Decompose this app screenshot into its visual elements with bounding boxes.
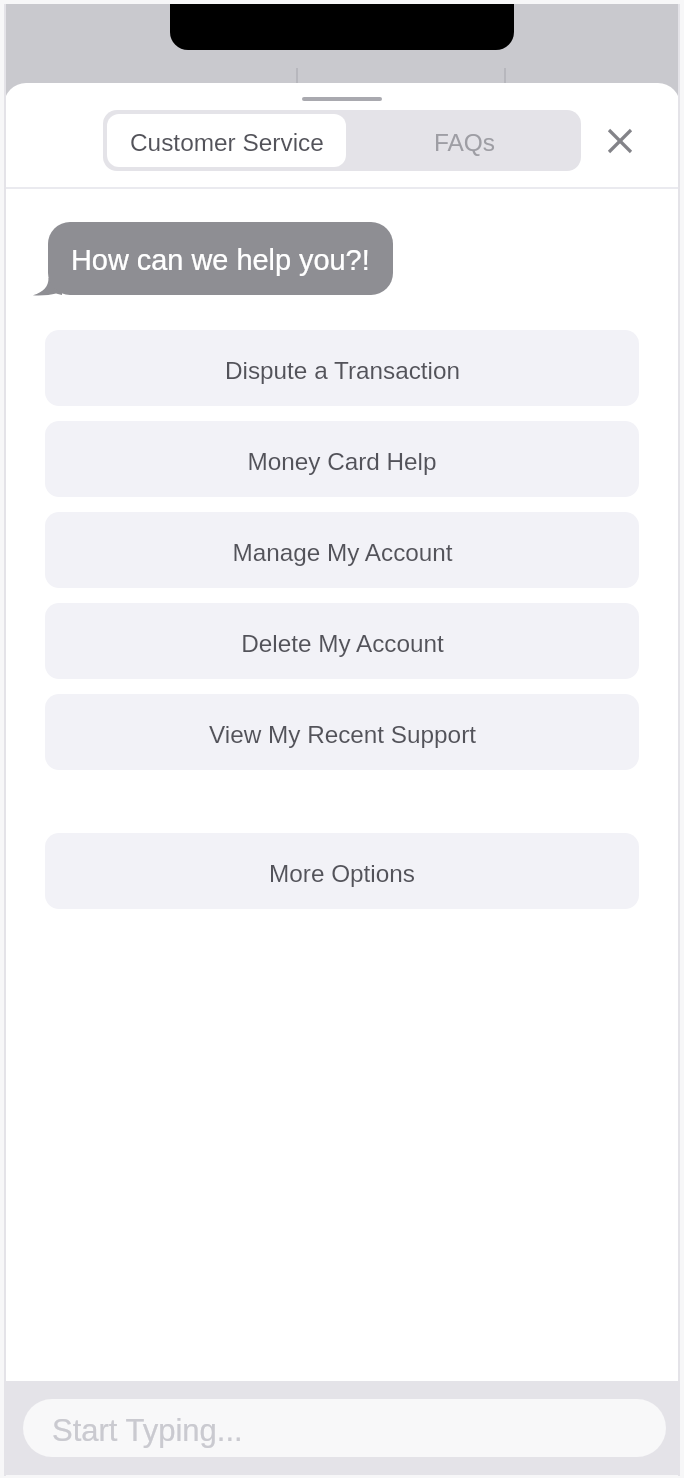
button[interactable]: View My Recent Support <box>45 694 639 770</box>
button[interactable]: FAQs <box>348 110 581 171</box>
button[interactable]: Close <box>593 114 647 168</box>
staticText: Delete My Account <box>241 630 444 657</box>
staticText: Dispute a Transaction <box>225 357 460 384</box>
staticText: Manage My Account <box>232 539 453 566</box>
staticText: FAQs <box>434 129 495 156</box>
button[interactable]: Start Typing... <box>23 1399 666 1457</box>
staticText: Customer Service <box>130 129 324 156</box>
button[interactable]: Dispute a Transaction <box>45 330 639 406</box>
staticText: More Options <box>269 860 415 887</box>
button[interactable]: Manage My Account <box>45 512 639 588</box>
staticText: Start Typing... <box>52 1413 243 1448</box>
button[interactable]: Customer Service <box>107 114 346 167</box>
button[interactable]: Money Card Help <box>45 421 639 497</box>
staticText: Money Card Help <box>247 448 437 475</box>
button[interactable]: Delete My Account <box>45 603 639 679</box>
staticText: View My Recent Support <box>209 721 476 748</box>
button[interactable]: More Options <box>45 833 639 909</box>
staticText: How can we help you?! <box>71 244 370 276</box>
